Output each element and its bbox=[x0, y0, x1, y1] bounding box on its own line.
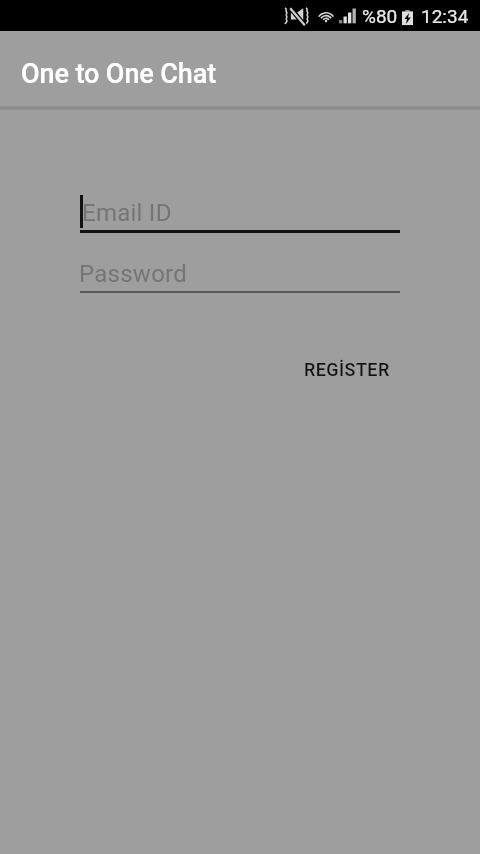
other: Sound off bbox=[284, 8, 310, 24]
button[interactable]: REGİSTER bbox=[291, 345, 402, 393]
other: Wi-Fi bbox=[317, 7, 335, 26]
staticText: REGİSTER bbox=[304, 359, 390, 380]
other: Battery bbox=[402, 7, 413, 26]
staticText: %80 bbox=[362, 5, 398, 27]
button[interactable]: Password bbox=[80, 251, 400, 293]
other: Signal bbox=[339, 7, 357, 26]
button[interactable]: Email ID bbox=[80, 190, 400, 233]
staticText: Password bbox=[79, 260, 188, 288]
staticText: One to One Chat bbox=[21, 58, 217, 90]
staticText: 12:34 bbox=[421, 5, 469, 27]
staticText: Email ID bbox=[82, 199, 172, 227]
